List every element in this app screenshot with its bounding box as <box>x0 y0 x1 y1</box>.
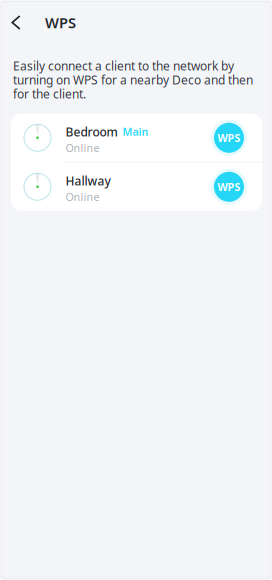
staticText: Hallway <box>65 173 110 189</box>
staticText: Online <box>65 141 99 155</box>
button[interactable]: Back <box>0 0 32 44</box>
staticText: WPS <box>45 13 76 32</box>
button[interactable]: Bedroom <box>11 114 262 162</box>
staticText: Main <box>122 125 148 139</box>
staticText: Easily connect a client to the network b… <box>13 58 253 102</box>
staticText: Bedroom <box>65 124 117 140</box>
button[interactable]: Hallway <box>11 163 262 211</box>
staticText: WPS <box>217 180 240 194</box>
staticText: WPS <box>217 131 240 145</box>
button[interactable]: WPS <box>211 169 247 205</box>
staticText: Online <box>65 190 99 204</box>
button[interactable]: WPS <box>211 120 247 156</box>
